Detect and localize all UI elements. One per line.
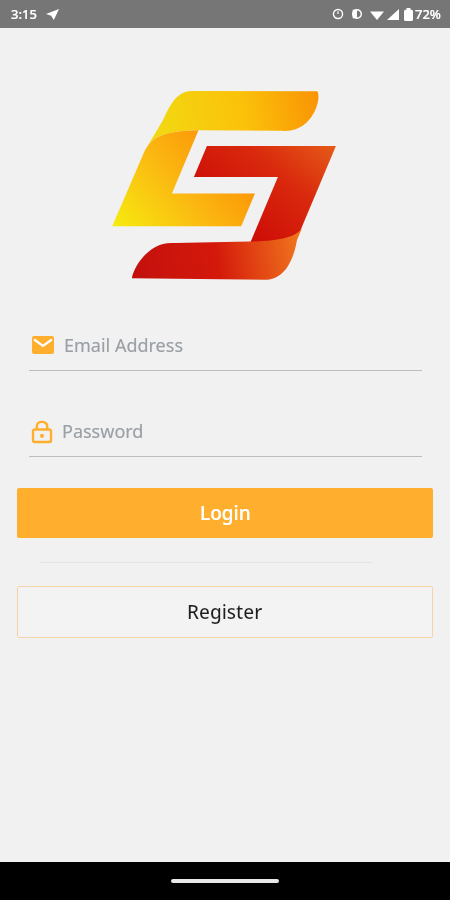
button[interactable]: Register [17, 586, 433, 638]
staticText: Email Address [64, 333, 184, 358]
staticText: 3:15 [11, 5, 37, 23]
staticText: 72% [415, 5, 441, 23]
button[interactable]: Email Address [0, 329, 450, 371]
button[interactable]: Login [17, 488, 433, 538]
button[interactable]: Password [0, 415, 450, 457]
staticText: Register [187, 599, 263, 625]
staticText: Login [200, 500, 251, 526]
staticText: Password [62, 419, 144, 444]
